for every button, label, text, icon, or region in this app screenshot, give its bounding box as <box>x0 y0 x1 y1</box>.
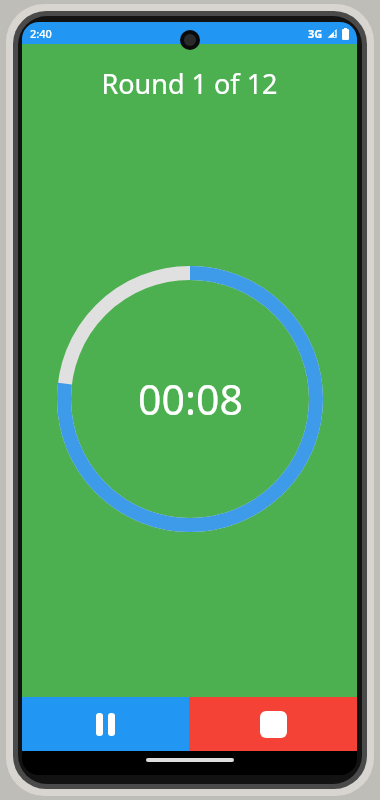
button[interactable]: Pause <box>22 697 189 751</box>
staticText: Round 1 of 12 <box>22 65 357 102</box>
staticText: 2:40 <box>30 26 52 41</box>
staticText: 3G <box>308 26 323 41</box>
staticText: 00:08 <box>138 371 243 427</box>
button[interactable]: Stop <box>189 697 357 751</box>
